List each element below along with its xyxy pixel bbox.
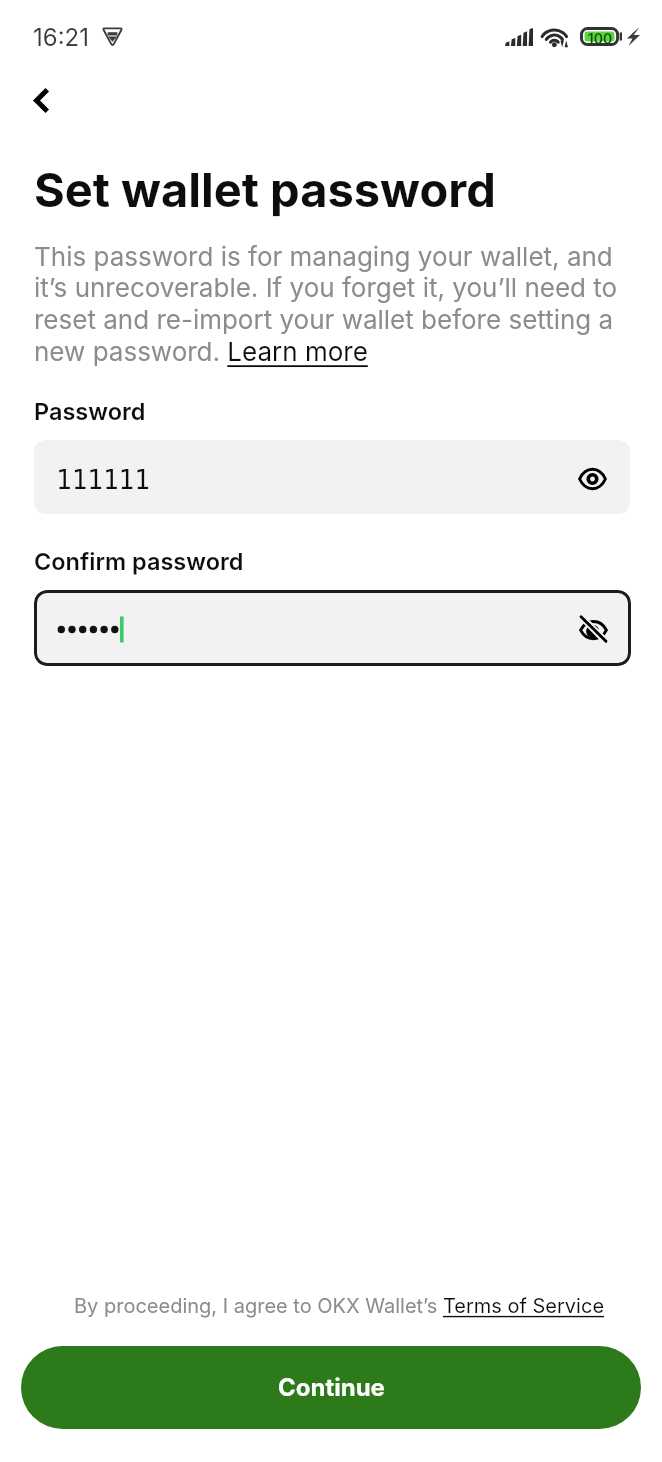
staticText: 111111 [56, 465, 150, 495]
staticText: Password [34, 397, 146, 425]
button[interactable]: Show password [570, 455, 614, 499]
button[interactable]: Hide password [571, 606, 615, 650]
staticText: 16:21 [33, 23, 89, 52]
button[interactable]: Continue [21, 1346, 641, 1429]
button[interactable]: Learn more [226, 340, 369, 368]
staticText: Confirm password [34, 547, 244, 575]
staticText: Set wallet password [34, 161, 496, 218]
button[interactable]: Hide password [34, 590, 631, 666]
button[interactable]: 111111 [34, 440, 630, 514]
staticText: 100 [581, 30, 619, 47]
button[interactable]: Terms of Service [442, 1294, 605, 1318]
staticText: Continue [278, 1373, 385, 1402]
staticText: This password is for managing your walle… [34, 241, 632, 368]
button[interactable]: Back [13, 71, 69, 127]
staticText: By proceeding, I agree to OKX Wallet’s T… [74, 1294, 605, 1318]
